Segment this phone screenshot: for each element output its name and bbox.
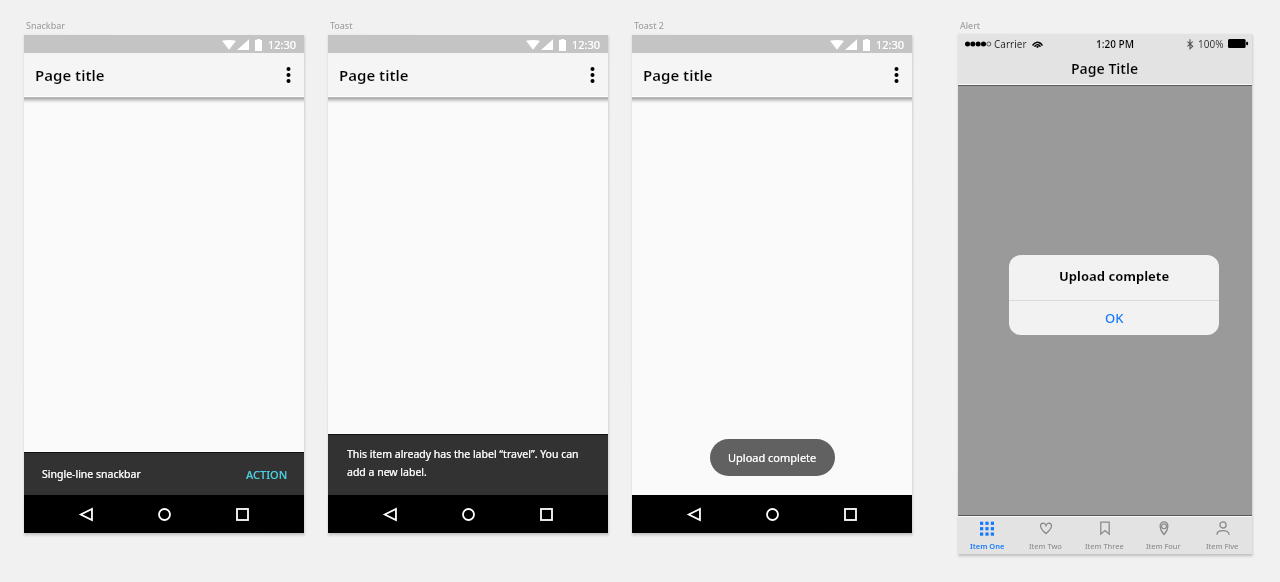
staticText: Page title: [35, 65, 105, 85]
button[interactable]: Back: [374, 498, 406, 530]
staticText: Page Title: [1071, 59, 1139, 78]
button[interactable]: Recents: [530, 498, 562, 530]
button[interactable]: Item Five: [1193, 517, 1252, 554]
staticText: Upload complete: [1059, 267, 1170, 285]
button[interactable]: Home: [756, 498, 788, 530]
staticText: 100%: [1198, 37, 1224, 51]
staticText: OK: [1105, 309, 1124, 327]
button[interactable]: Home: [452, 498, 484, 530]
button[interactable]: More options: [272, 59, 304, 91]
button[interactable]: Recents: [834, 498, 866, 530]
button[interactable]: Recents: [226, 498, 258, 530]
staticText: Page title: [339, 65, 409, 85]
staticText: Item Two: [1029, 541, 1062, 551]
staticText: Alert: [960, 19, 981, 31]
staticText: Item One: [970, 541, 1005, 551]
staticText: Item Three: [1085, 541, 1124, 551]
staticText: Toast 2: [634, 19, 664, 31]
button[interactable]: Upload complete: [710, 439, 835, 476]
button[interactable]: Back: [678, 498, 710, 530]
staticText: Toast: [330, 19, 353, 31]
button[interactable]: More options: [576, 59, 608, 91]
button[interactable]: Back: [70, 498, 102, 530]
button[interactable]: Item Three: [1075, 517, 1134, 554]
button[interactable]: Home: [148, 498, 180, 530]
button[interactable]: More options: [880, 59, 912, 91]
staticText: Single-line snackbar: [42, 467, 141, 481]
staticText: This item already has the label “travel”…: [347, 447, 590, 479]
staticText: Carrier: [994, 37, 1027, 51]
staticText: ACTION: [246, 467, 288, 482]
staticText: Upload complete: [728, 450, 817, 465]
staticText: 1:20 PM: [1096, 37, 1134, 51]
staticText: Page title: [643, 65, 713, 85]
button[interactable]: ACTION: [238, 453, 296, 495]
button[interactable]: Item Four: [1134, 517, 1193, 554]
staticText: Item Five: [1206, 541, 1239, 551]
staticText: 12:30: [876, 37, 905, 52]
staticText: 12:30: [268, 37, 297, 52]
staticText: Snackbar: [26, 19, 65, 31]
button[interactable]: Item Two: [1016, 517, 1075, 554]
staticText: 12:30: [572, 37, 601, 52]
button[interactable]: OK: [1009, 301, 1219, 335]
button[interactable]: Item One: [958, 517, 1016, 554]
staticText: Item Four: [1146, 541, 1181, 551]
